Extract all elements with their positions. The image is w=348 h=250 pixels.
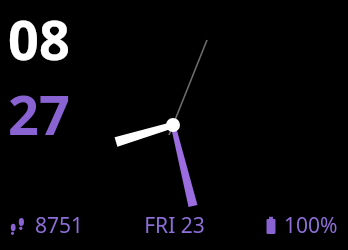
button[interactable]: Step count [10,211,120,240]
staticText: FRI 23 [144,211,205,240]
button[interactable]: Battery level [229,211,338,240]
other: Step count [10,215,30,237]
button[interactable]: FRI 23 [120,211,229,240]
staticText: 100% [284,211,338,240]
staticText: 8751 [35,211,84,240]
staticText: 08 [8,2,70,76]
button[interactable]: 08 [8,2,70,151]
other: Battery level [264,215,278,237]
staticText: 27 [8,77,70,151]
